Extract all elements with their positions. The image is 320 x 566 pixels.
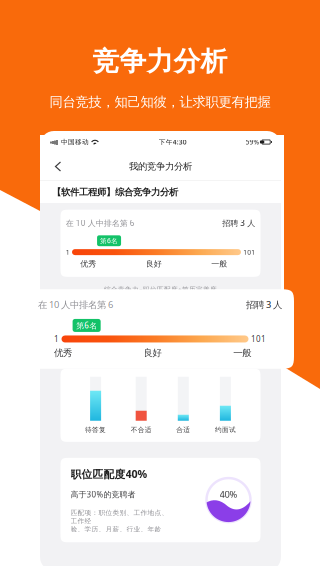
staticText: 良好 bbox=[143, 347, 161, 359]
staticText: 在 10 人中排名第 6 bbox=[66, 218, 135, 228]
staticText: 职位匹配度40% bbox=[70, 467, 147, 481]
staticText: 约面试 bbox=[215, 426, 236, 434]
staticText: 第6名 bbox=[76, 320, 97, 331]
staticText: 59% bbox=[246, 138, 260, 146]
staticText: 我的竞争力分析 bbox=[129, 161, 192, 172]
button[interactable]: Back bbox=[45, 153, 71, 179]
staticText: 高于30%的竞聘者 bbox=[70, 489, 135, 500]
staticText: 中国移动 bbox=[61, 138, 89, 146]
staticText: 1 bbox=[66, 248, 70, 257]
staticText: 综合竞争力=职位匹配度+简历完善度 bbox=[104, 285, 217, 294]
staticText: 招聘 3 人 bbox=[222, 218, 255, 228]
staticText: 下午4:30 bbox=[159, 138, 187, 146]
staticText: 竞争力分析 bbox=[92, 45, 227, 78]
staticText: 一般 bbox=[211, 259, 227, 269]
staticText: 101 bbox=[243, 248, 255, 257]
staticText: 良好 bbox=[146, 259, 162, 269]
staticText: 待答复 bbox=[85, 426, 106, 434]
staticText: 一般 bbox=[233, 347, 251, 359]
staticText: 在 10 人中排名第 6 bbox=[38, 298, 113, 311]
staticText: 优秀 bbox=[54, 347, 72, 359]
staticText: 不合适 bbox=[131, 426, 152, 434]
staticText: 优秀 bbox=[80, 259, 96, 269]
staticText: 同台竞技，知己知彼，让求职更有把握 bbox=[49, 94, 270, 110]
staticText: 1 bbox=[54, 334, 59, 344]
staticText: 【软件工程师】综合竞争力分析 bbox=[52, 186, 178, 198]
staticText: 40% bbox=[219, 488, 237, 500]
staticText: 合适 bbox=[176, 426, 190, 434]
staticText: 第6名 bbox=[100, 236, 118, 245]
staticText: 招聘 3 人 bbox=[246, 298, 282, 311]
staticText: 101 bbox=[251, 334, 266, 344]
staticText: 匹配项：职位类别、工作地点、工作经 验、学历、月薪、行业、年龄 bbox=[70, 509, 168, 533]
